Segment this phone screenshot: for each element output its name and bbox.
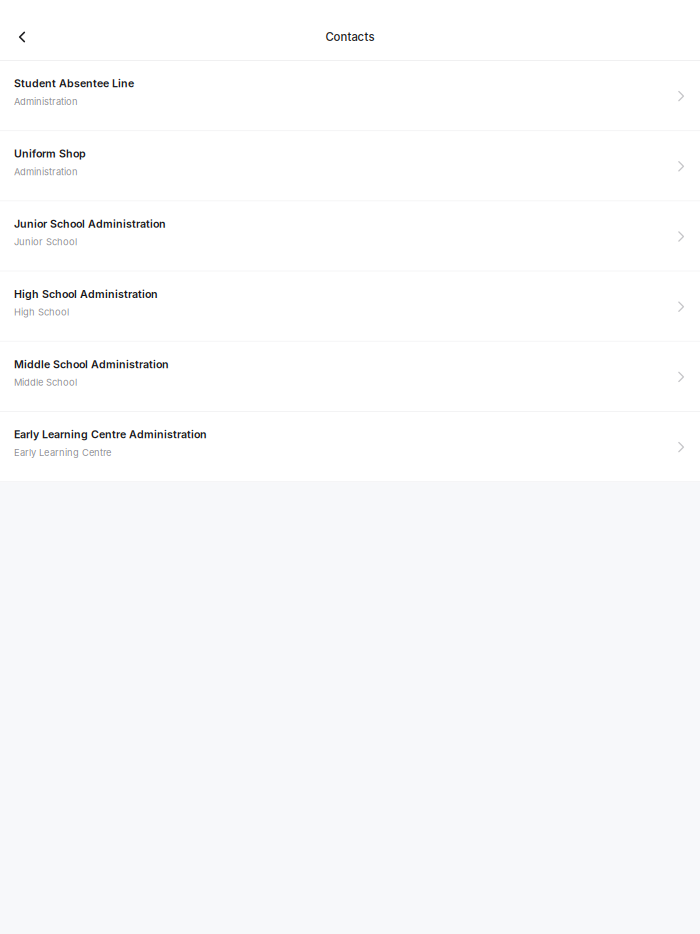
staticText: Student Absentee Line [14,77,134,90]
button[interactable]: Student Absentee Line [0,61,700,131]
staticText: High School [14,306,69,318]
button[interactable]: High School Administration [0,272,700,342]
button[interactable]: Back [0,15,44,59]
staticText: Junior School [14,236,77,248]
staticText: High School Administration [14,288,158,300]
button[interactable]: Early Learning Centre Administration [0,412,700,482]
staticText: Junior School Administration [14,217,166,230]
button[interactable]: Junior School Administration [0,201,700,272]
staticText: Middle School Administration [14,358,169,371]
button[interactable]: Middle School Administration [0,342,700,412]
staticText: Contacts [325,30,374,44]
staticText: Middle School [14,377,77,388]
staticText: Uniform Shop [14,147,86,160]
staticText: Administration [14,166,78,177]
button[interactable]: Uniform Shop [0,131,700,201]
staticText: Early Learning Centre [14,447,111,458]
staticText: Early Learning Centre Administration [14,428,207,441]
staticText: Administration [14,96,78,107]
